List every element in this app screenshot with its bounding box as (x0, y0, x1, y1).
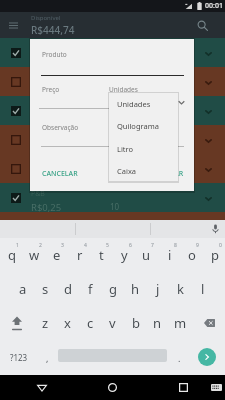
button[interactable]: . (170, 340, 188, 375)
staticText: 1 (110, 85, 115, 96)
button[interactable]: Arroz (0, 38, 225, 67)
button[interactable]: k (169, 272, 192, 306)
staticText: 1 (16, 242, 19, 249)
staticText: R$4,20 (31, 114, 62, 127)
button[interactable]: j (146, 272, 169, 306)
staticText: R$8,90 (31, 85, 62, 98)
button[interactable]: Enter (198, 348, 216, 366)
staticText: t (99, 246, 104, 264)
staticText: Observação (42, 123, 79, 132)
button[interactable]: Back (31, 375, 53, 400)
staticText: 1 (110, 230, 115, 241)
staticText: Unidades (109, 85, 138, 94)
button[interactable]: Voice input (208, 222, 222, 236)
button[interactable]: Leite (0, 96, 225, 125)
button[interactable]: Sal (0, 212, 225, 241)
button[interactable]: r (68, 238, 91, 272)
button[interactable]: Açúcar (0, 154, 225, 183)
button[interactable]: Quilograma (109, 115, 178, 137)
staticText: Unidades (117, 99, 151, 109)
button[interactable]: g (101, 272, 124, 306)
button[interactable]: SALVAR (140, 165, 184, 183)
button[interactable]: Expand (201, 163, 215, 177)
button[interactable]: Shift (0, 306, 33, 340)
staticText: R$0,25 (31, 201, 62, 214)
button[interactable]: t (90, 238, 113, 272)
button[interactable]: Expand (201, 47, 215, 61)
staticText: z (42, 314, 49, 332)
staticText: k (177, 280, 184, 298)
button[interactable]: x (56, 306, 79, 340)
button[interactable]: n (146, 306, 169, 340)
button[interactable]: u (135, 238, 158, 272)
button[interactable]: Menu (0, 12, 26, 38)
staticText: u (142, 246, 151, 264)
staticText: SALVAR (158, 169, 184, 179)
staticText: , (46, 352, 49, 364)
button[interactable]: , (38, 340, 56, 375)
button[interactable]: z (34, 306, 57, 340)
staticText: R$15,00 (31, 143, 67, 156)
button[interactable]: Litro (109, 138, 178, 160)
staticText: 6 (129, 242, 132, 249)
staticText: n (153, 314, 162, 332)
button[interactable]: CANCELAR (38, 165, 82, 183)
button[interactable]: v (101, 306, 124, 340)
staticText: R$2,30 (31, 230, 62, 243)
button[interactable]: Caixa (109, 160, 178, 182)
staticText: r (77, 246, 83, 264)
button[interactable]: d (56, 272, 79, 306)
staticText: R$444,74 (31, 23, 75, 37)
staticText: y (121, 246, 128, 264)
button[interactable]: Home (101, 375, 123, 400)
button[interactable]: a (11, 272, 34, 306)
button[interactable]: Recents (172, 375, 194, 400)
button[interactable]: y (113, 238, 136, 272)
staticText: 5 (106, 242, 109, 249)
button[interactable]: i (158, 238, 181, 272)
staticText: q (8, 246, 16, 264)
button[interactable]: l (191, 272, 214, 306)
staticText: CANCELAR (42, 169, 78, 179)
button[interactable]: w (23, 238, 46, 272)
button[interactable]: Unidades (109, 93, 178, 115)
staticText: g (109, 280, 117, 298)
button[interactable]: Expand (201, 105, 215, 119)
staticText: ?123 (10, 352, 28, 363)
button[interactable]: Café (0, 125, 225, 154)
staticText: Litro (117, 144, 134, 154)
staticText: 00:01 (205, 1, 223, 11)
button[interactable]: f (79, 272, 102, 306)
button[interactable]: Backspace (194, 306, 225, 340)
staticText: 2 (39, 242, 42, 249)
button[interactable]: P&B (0, 183, 225, 212)
button[interactable]: ?123 (0, 340, 38, 375)
button[interactable]: h (124, 272, 147, 306)
staticText: 7 (151, 242, 154, 249)
button[interactable]: Expand (201, 76, 215, 90)
button[interactable]: Feijão (0, 67, 225, 96)
button[interactable]: Search (193, 16, 211, 34)
button[interactable]: m (169, 306, 192, 340)
button[interactable]: s (34, 272, 57, 306)
button[interactable]: Switch keyboard (205, 375, 225, 400)
staticText: R$5,75 (31, 172, 62, 185)
staticText: h (131, 280, 140, 298)
staticText: i (168, 246, 172, 264)
staticText: Quilograma (117, 121, 159, 131)
button[interactable]: c (79, 306, 102, 340)
button[interactable]: b (124, 306, 147, 340)
staticText: . (178, 352, 181, 364)
button[interactable]: Expand (201, 192, 215, 206)
button[interactable]: q (0, 238, 23, 272)
staticText: p (211, 246, 219, 264)
button[interactable]: e (45, 238, 68, 272)
button[interactable]: p (203, 238, 225, 272)
button[interactable]: Expand (201, 134, 215, 148)
button[interactable]: o (180, 238, 203, 272)
button[interactable]: Expand (201, 221, 215, 235)
